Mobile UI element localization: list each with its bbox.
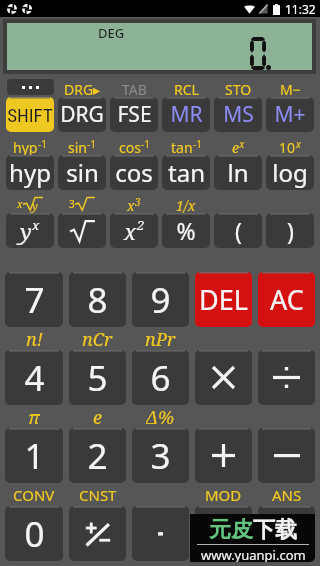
staticText: ) (287, 215, 294, 246)
button[interactable]: hyp (6, 155, 54, 190)
staticText: x (127, 196, 135, 215)
button[interactable]: EXP (195, 506, 252, 561)
staticText: e (232, 138, 239, 157)
button[interactable]: 4 (5, 350, 63, 405)
staticText: y (32, 198, 38, 213)
staticText: x (32, 216, 40, 234)
staticText: tan (168, 156, 205, 189)
button[interactable]: 5 (69, 350, 126, 405)
button[interactable]: Plus minus (69, 506, 126, 561)
button[interactable]: 8 (69, 272, 126, 327)
staticText: x (17, 197, 23, 211)
button[interactable]: x (110, 213, 158, 248)
staticText: 下载 (253, 516, 297, 544)
staticText: nCr (82, 327, 113, 350)
staticText: 4 (24, 354, 45, 402)
staticText: x (239, 137, 245, 151)
button[interactable]: Square root (58, 213, 106, 248)
button[interactable]: Plus (195, 428, 252, 483)
staticText: 6 (150, 354, 171, 402)
staticText: 3 (69, 197, 75, 211)
button[interactable]: ) (266, 213, 314, 248)
staticText: 9 (150, 276, 171, 324)
staticText: hyp (13, 138, 38, 157)
staticText: 8 (87, 276, 108, 324)
button[interactable]: sin (58, 155, 106, 190)
staticText: ( (235, 215, 242, 246)
staticText: % (176, 215, 196, 246)
staticText: -1 (193, 137, 202, 151)
button[interactable]: MS (214, 97, 262, 132)
button[interactable]: ( (214, 213, 262, 248)
button[interactable]: 9 (132, 272, 189, 327)
button[interactable]: More options (7, 79, 54, 95)
button[interactable]: MR (162, 97, 210, 132)
button[interactable]: SHIFT (6, 97, 54, 132)
button[interactable]: 2 (69, 428, 126, 483)
staticText: 11:32 (285, 1, 316, 17)
button[interactable]: % (162, 213, 210, 248)
button[interactable]: tan (162, 155, 210, 190)
staticText: CONV (13, 485, 55, 505)
button[interactable]: 7 (5, 272, 63, 327)
button[interactable]: log (266, 155, 314, 190)
staticText: M+ (274, 100, 306, 129)
staticText: y (20, 216, 32, 246)
button[interactable]: 1 (5, 428, 63, 483)
staticText: 10 (279, 138, 296, 157)
button[interactable]: Multiply (195, 350, 252, 405)
staticText: 2 (137, 216, 145, 234)
staticText: ln (227, 156, 249, 189)
staticText: DEG (98, 24, 125, 42)
staticText: MS (223, 100, 254, 129)
staticText: cos (115, 156, 153, 189)
staticText: -1 (38, 137, 47, 151)
button[interactable]: 6 (132, 350, 189, 405)
button[interactable]: cos (110, 155, 158, 190)
staticText: tan (171, 138, 193, 157)
staticText: SHIFT (7, 104, 53, 126)
button[interactable]: 0 (5, 506, 63, 561)
staticText: MOD (205, 485, 242, 505)
staticText: RCL (174, 80, 199, 99)
staticText: e (93, 405, 102, 428)
staticText: 1/x (176, 196, 196, 215)
staticText: 5 (87, 354, 108, 402)
staticText: 3 (150, 432, 171, 480)
staticText: DRG▸ (64, 80, 101, 99)
button[interactable]: Divide (258, 350, 315, 405)
button[interactable]: Decimal point (132, 506, 189, 561)
staticText: 1 (24, 432, 45, 480)
staticText: STO (225, 80, 252, 99)
staticText: x (296, 137, 301, 151)
staticText: Δ% (146, 405, 175, 428)
staticText: DRG (60, 100, 104, 129)
button[interactable]: Minus (258, 428, 315, 483)
staticText: MR (170, 100, 203, 129)
staticText: log (272, 156, 308, 189)
staticText: DEL (199, 281, 248, 318)
button[interactable]: DEL (195, 272, 252, 327)
button[interactable]: Equals (258, 506, 315, 561)
staticText: nPr (145, 327, 176, 350)
staticText: ANS (272, 485, 302, 505)
staticText: 元皮 (209, 516, 253, 544)
button[interactable]: M+ (266, 97, 314, 132)
button[interactable]: 3 (132, 428, 189, 483)
button[interactable]: y (6, 213, 54, 248)
staticText: n! (26, 327, 43, 350)
button[interactable]: AC (258, 272, 315, 327)
staticText: x (124, 216, 137, 246)
staticText: hyp (9, 156, 51, 189)
staticText: π (28, 405, 40, 428)
staticText: 3 (135, 195, 141, 209)
staticText: FSE (117, 100, 152, 129)
button[interactable]: DRG (58, 97, 106, 132)
staticText: www.yuanpi.com (201, 546, 306, 562)
staticText: -1 (141, 137, 150, 151)
staticText: -1 (87, 137, 96, 151)
button[interactable]: ln (214, 155, 262, 190)
staticText: TAB (122, 80, 147, 99)
button[interactable]: FSE (110, 97, 158, 132)
staticText: AC (270, 281, 304, 318)
